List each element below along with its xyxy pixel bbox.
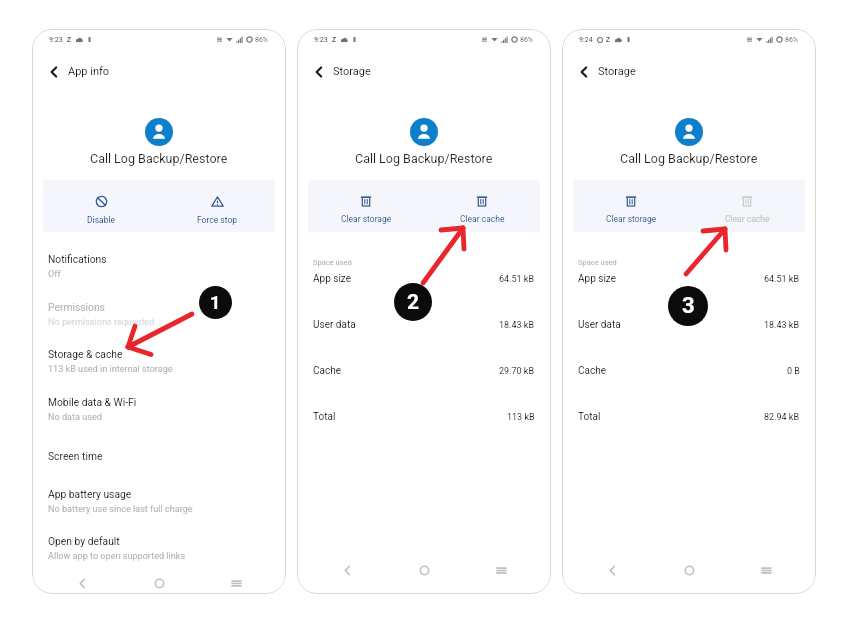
button[interactable]: Recent apps — [728, 555, 805, 585]
staticText: 9:23 — [49, 36, 63, 44]
button[interactable]: Cache — [562, 348, 816, 394]
button[interactable]: App battery usage — [32, 478, 286, 525]
staticText: Cache — [578, 365, 606, 377]
staticText: Call Log Backup/Restore — [355, 151, 493, 166]
staticText: No battery use since last full charge — [48, 504, 193, 515]
staticText: Allow app to open supported links — [48, 551, 186, 562]
button[interactable]: Cache — [297, 348, 551, 394]
button[interactable]: App size — [562, 256, 816, 302]
button[interactable]: Storage & cache — [32, 338, 286, 385]
staticText: Open by default — [48, 535, 120, 547]
staticText: 2 — [407, 290, 420, 315]
button[interactable]: Clear cache — [424, 180, 540, 232]
button[interactable]: Navigate up — [297, 50, 551, 86]
staticText: 29.70 kB — [499, 366, 535, 377]
staticText: Permissions — [48, 301, 105, 313]
staticText: 86% — [520, 36, 533, 44]
button[interactable]: User data — [562, 302, 816, 348]
staticText: 113 kB used in internal storage — [48, 364, 173, 375]
staticText: 1 — [210, 292, 221, 313]
staticText: 0 B — [787, 366, 800, 377]
staticText: Call Log Backup/Restore — [620, 151, 758, 166]
button[interactable]: Recent apps — [463, 555, 540, 585]
staticText: 3 — [682, 293, 695, 319]
button[interactable]: Navigate up — [576, 64, 592, 80]
button[interactable]: Total — [562, 394, 816, 440]
button[interactable]: Notifications — [32, 242, 286, 290]
staticText: Space used — [578, 258, 617, 267]
staticText: Notifications — [48, 253, 107, 265]
staticText: 9:23 — [314, 36, 328, 44]
staticText: Clear cache — [460, 214, 505, 224]
staticText: Clear cache — [725, 214, 770, 224]
staticText: Call Log Backup/Restore — [90, 151, 228, 166]
staticText: Z — [67, 36, 71, 44]
staticText: 113 kB — [507, 412, 535, 423]
staticText: App battery usage — [48, 488, 132, 500]
staticText: Off — [48, 269, 61, 280]
button[interactable]: Clear cache — [689, 180, 805, 232]
staticText: 18.43 kB — [764, 320, 800, 331]
staticText: Storage — [333, 65, 371, 78]
button[interactable]: Mobile data & Wi-Fi — [32, 385, 286, 433]
staticText: Storage & cache — [48, 348, 123, 360]
staticText: App size — [313, 273, 352, 285]
button[interactable]: Back — [308, 555, 386, 585]
button[interactable]: Permissions — [32, 290, 286, 338]
staticText: 64.51 kB — [499, 274, 535, 285]
staticText: 9:24 — [579, 36, 593, 44]
staticText: App info — [68, 65, 110, 78]
staticText: Cache — [313, 365, 341, 377]
staticText: Disable — [87, 215, 116, 225]
button[interactable]: Total — [297, 394, 551, 440]
staticText: Force stop — [197, 215, 238, 225]
staticText: User data — [578, 319, 621, 331]
button[interactable]: Navigate up — [46, 64, 62, 80]
button[interactable]: Back — [573, 555, 651, 585]
staticText: 18.43 kB — [499, 320, 535, 331]
staticText: 64.51 kB — [764, 274, 800, 285]
staticText: Space used — [313, 258, 352, 267]
staticText: Z — [606, 36, 610, 44]
button[interactable]: Home — [651, 555, 728, 585]
button[interactable]: Open by default — [32, 525, 286, 572]
button[interactable]: Navigate up — [32, 50, 286, 86]
staticText: Clear storage — [606, 214, 657, 224]
staticText: Clear storage — [341, 214, 392, 224]
button[interactable]: App size — [297, 256, 551, 302]
staticText: Screen time — [48, 450, 103, 462]
button[interactable]: Navigate up — [562, 50, 816, 86]
button[interactable]: Home — [121, 572, 198, 594]
button[interactable]: Disable — [43, 180, 159, 232]
button[interactable]: Recent apps — [198, 572, 275, 594]
staticText: User data — [313, 319, 356, 331]
button[interactable]: Navigate up — [311, 64, 327, 80]
staticText: Total — [313, 411, 336, 423]
staticText: Storage — [598, 65, 636, 78]
button[interactable]: Force stop — [159, 180, 275, 232]
staticText: 82.94 kB — [764, 412, 800, 423]
button[interactable]: Home — [386, 555, 463, 585]
staticText: No permissions requested — [48, 317, 155, 328]
staticText: App size — [578, 273, 617, 285]
staticText: 86% — [255, 36, 268, 44]
staticText: Mobile data & Wi-Fi — [48, 396, 137, 408]
button[interactable]: Clear storage — [308, 180, 424, 232]
button[interactable]: Screen time — [32, 433, 286, 478]
staticText: Total — [578, 411, 601, 423]
button[interactable]: Clear storage — [573, 180, 689, 232]
staticText: No data used — [48, 412, 102, 423]
staticText: Z — [332, 36, 336, 44]
button[interactable]: User data — [297, 302, 551, 348]
staticText: 86% — [785, 36, 798, 44]
button[interactable]: Back — [43, 572, 121, 594]
